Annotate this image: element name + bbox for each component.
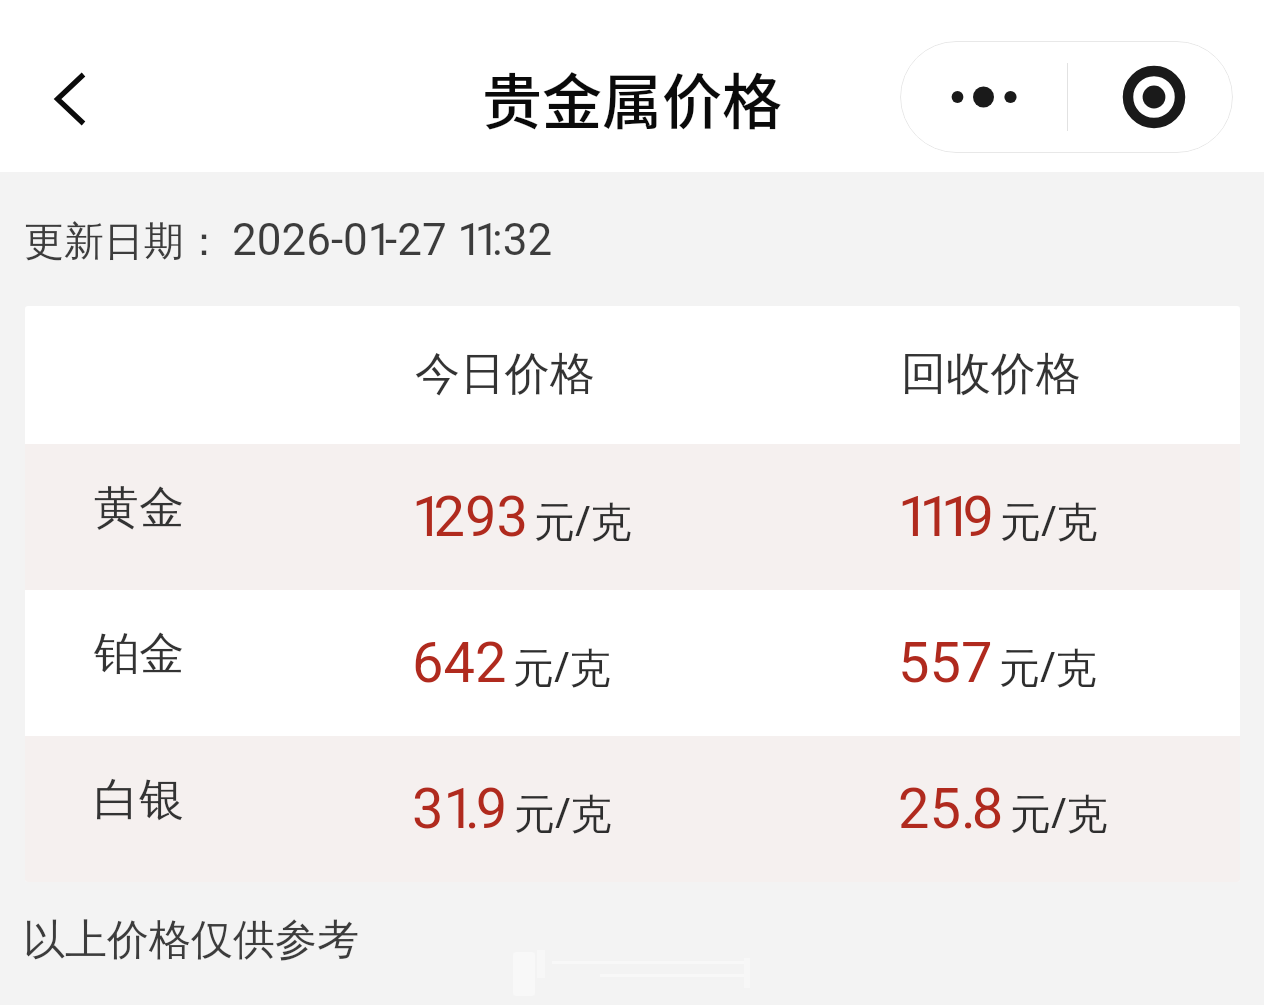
- staticText: 2026-01-27 11:32: [232, 214, 553, 266]
- staticText: 今日价格: [415, 346, 595, 403]
- staticText: 黄金: [94, 480, 184, 537]
- button[interactable]: Back: [31, 60, 109, 138]
- button[interactable]: [25, 590, 1240, 736]
- staticText: 642: [412, 630, 507, 696]
- staticText: 1119: [898, 484, 994, 550]
- staticText: 557: [898, 630, 993, 696]
- staticText: 更新日期：: [24, 216, 224, 266]
- staticText: 25.8: [898, 776, 1004, 842]
- button[interactable]: More options: [900, 41, 1067, 153]
- staticText: 回收价格: [901, 346, 1081, 403]
- staticText: 元/克: [534, 492, 632, 548]
- staticText: 元/克: [999, 638, 1097, 694]
- staticText: 1293: [412, 484, 528, 550]
- staticText: 以上价格仅供参考: [23, 914, 359, 967]
- button[interactable]: Close mini program: [1068, 41, 1233, 153]
- staticText: 白银: [94, 772, 184, 829]
- staticText: 31.9: [412, 776, 508, 842]
- button[interactable]: [25, 736, 1240, 882]
- button[interactable]: [25, 444, 1240, 590]
- staticText: 元/克: [514, 784, 612, 840]
- staticText: 元/克: [1000, 492, 1098, 548]
- staticText: 铂金: [94, 626, 184, 683]
- staticText: 元/克: [513, 638, 611, 694]
- staticText: 元/克: [1010, 784, 1108, 840]
- staticText: 贵金属价格: [0, 54, 1264, 141]
